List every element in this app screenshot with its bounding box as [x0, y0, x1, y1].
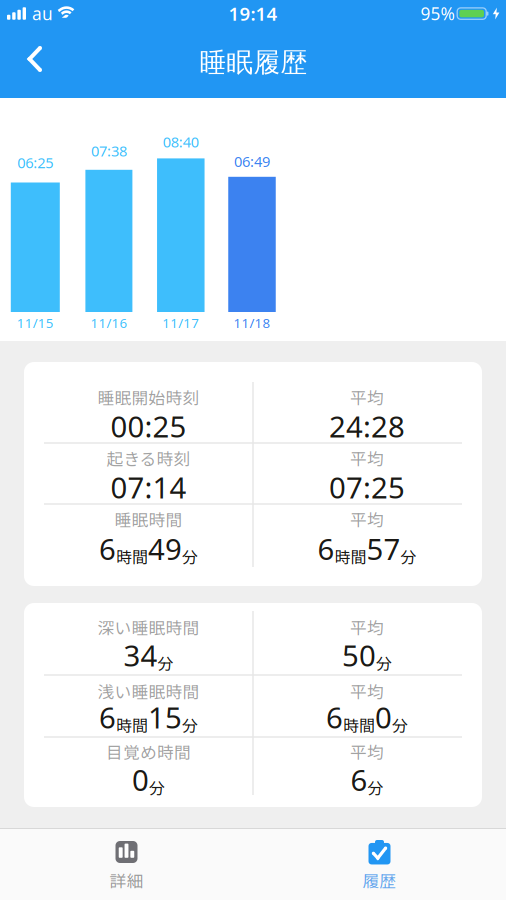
staticText: 平均 [350, 615, 384, 639]
staticText: 6時間57分 [317, 529, 416, 568]
staticText: 95% [420, 2, 454, 25]
staticText: 睡眠開始時刻 [97, 385, 199, 409]
staticText: 平均 [350, 507, 384, 531]
staticText: 07:14 [110, 467, 186, 506]
staticText: 起きる時刻 [106, 446, 190, 470]
staticText: au [32, 2, 53, 25]
staticText: 34分 [123, 635, 173, 674]
staticText: 11/15 [17, 314, 54, 332]
button[interactable]: 戻る [13, 37, 57, 81]
staticText: 50分 [342, 635, 392, 674]
staticText: 11/17 [162, 314, 199, 332]
staticText: 11/18 [233, 314, 270, 332]
staticText: 07:38 [91, 141, 127, 161]
staticText: 0分 [132, 760, 165, 799]
staticText: 浅い睡眠時間 [97, 679, 199, 703]
staticText: 07:25 [329, 467, 405, 506]
staticText: 深い睡眠時間 [97, 615, 199, 639]
staticText: 08:40 [163, 132, 199, 152]
staticText: 詳細 [109, 868, 143, 892]
staticText: 24:28 [329, 406, 405, 445]
staticText: 睡眠履歴 [199, 46, 307, 79]
button[interactable]: 履歴 [253, 828, 506, 900]
staticText: 6時間15分 [99, 697, 198, 736]
staticText: 睡眠時間 [114, 507, 182, 531]
staticText: 平均 [350, 385, 384, 409]
staticText: 平均 [350, 679, 384, 703]
staticText: 19:14 [228, 1, 277, 26]
staticText: 06:25 [17, 153, 53, 172]
button[interactable]: 詳細 [0, 828, 253, 900]
staticText: 平均 [350, 446, 384, 470]
staticText: 06:49 [234, 152, 270, 171]
staticText: 平均 [350, 739, 384, 763]
staticText: 11/16 [90, 314, 127, 332]
staticText: 目覚め時間 [106, 739, 191, 763]
staticText: 6分 [350, 760, 383, 799]
staticText: 00:25 [110, 406, 186, 445]
staticText: 6時間0分 [326, 697, 408, 736]
staticText: 履歴 [362, 868, 396, 892]
staticText: 6時間49分 [99, 529, 198, 568]
